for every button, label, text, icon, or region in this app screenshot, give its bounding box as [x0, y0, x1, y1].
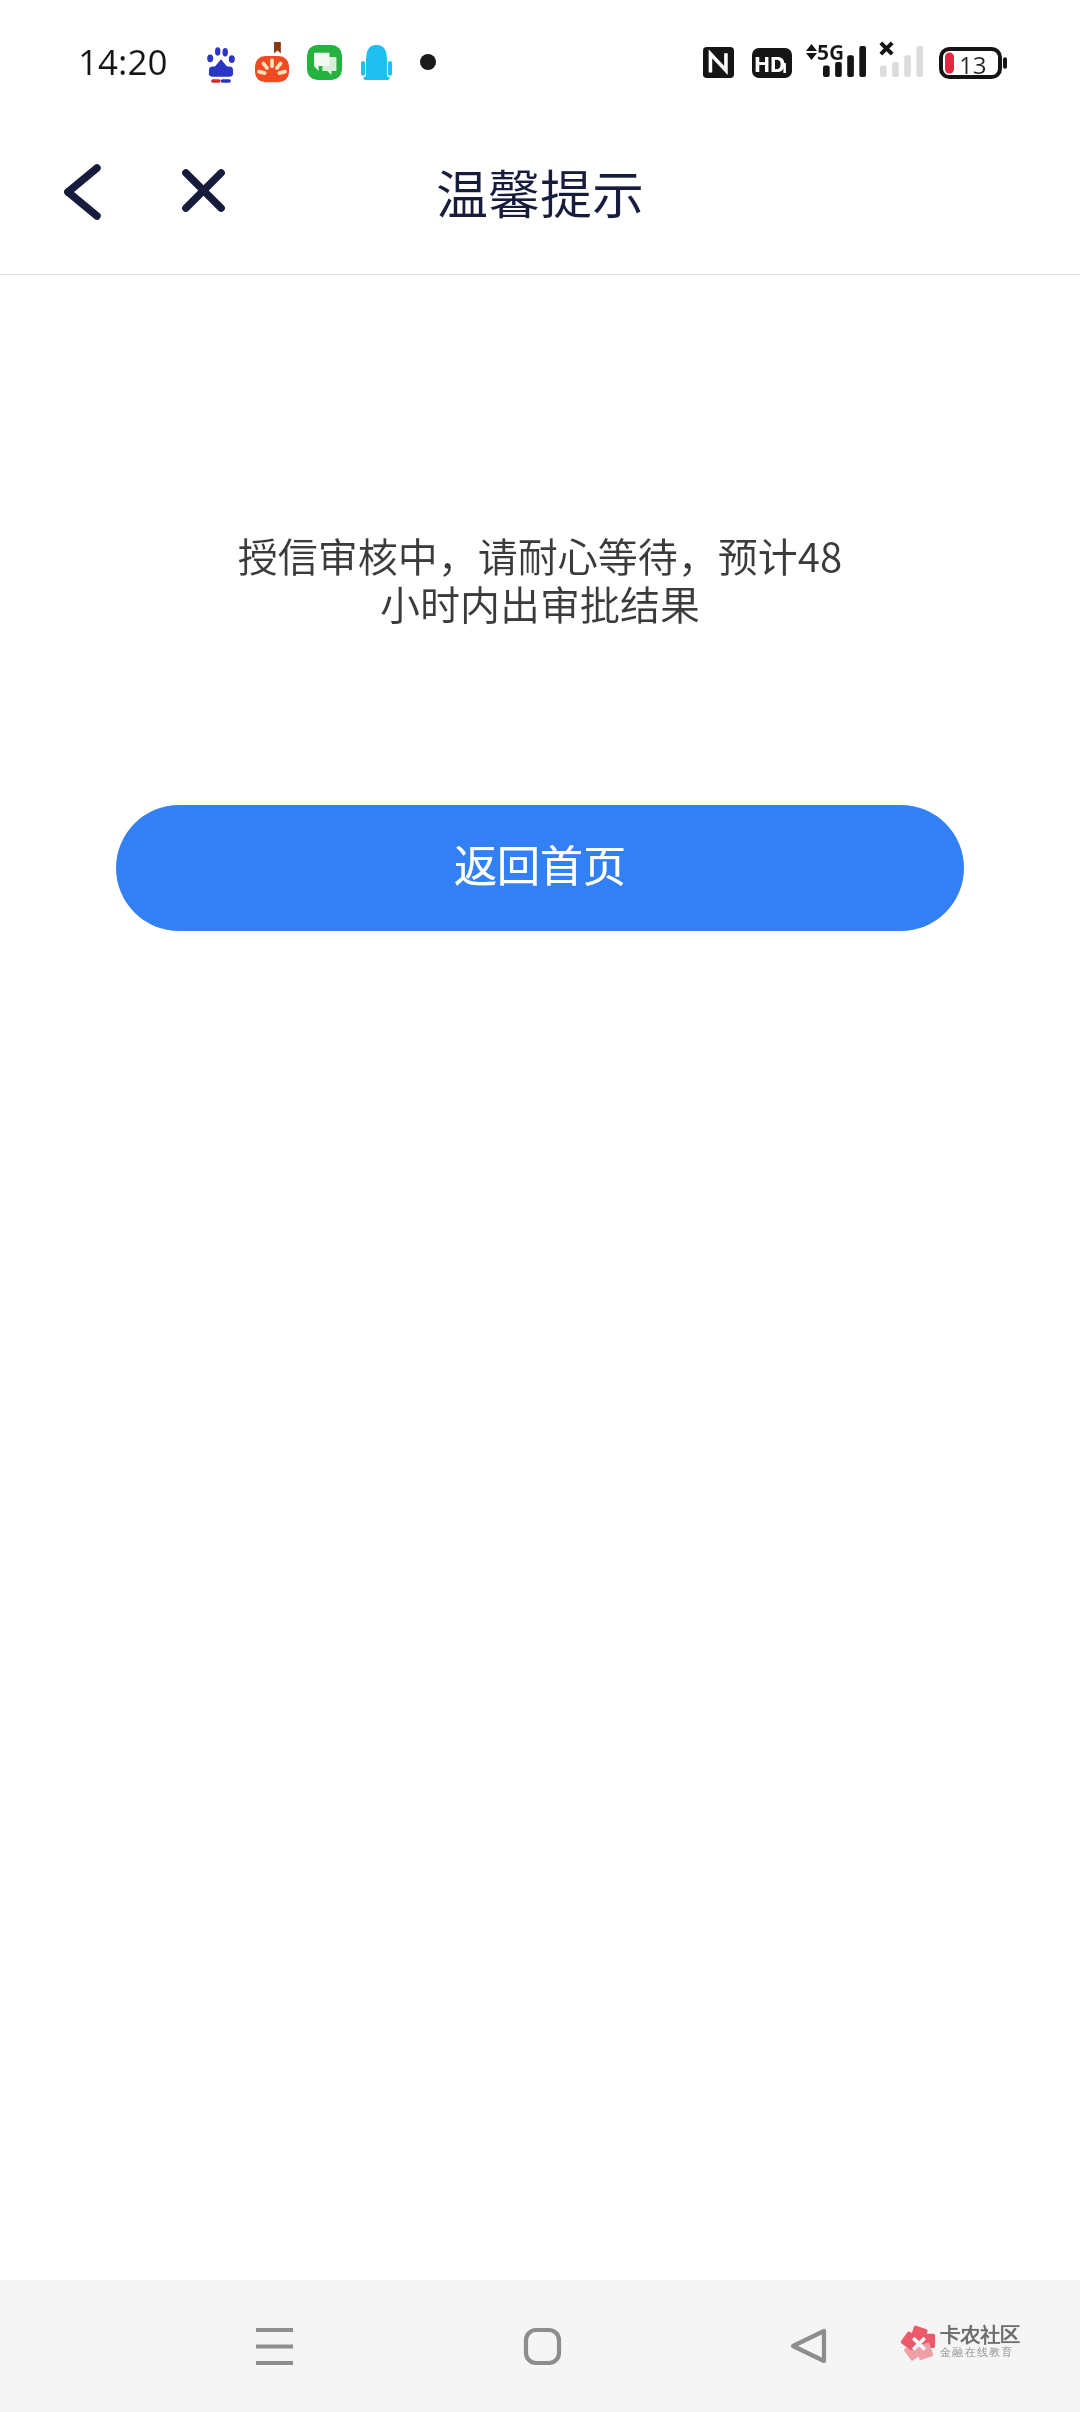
- staticText: HD: [754, 50, 786, 79]
- staticText: 14:20: [78, 38, 168, 86]
- staticText: 5G: [817, 38, 845, 67]
- staticText: 13: [959, 48, 987, 80]
- staticText: 温馨提示: [436, 154, 645, 229]
- staticText: 金融在线教育: [940, 2345, 1014, 2359]
- staticText: 返回首页: [454, 832, 626, 894]
- staticText: 1: [780, 58, 789, 77]
- button[interactable]: Back: [40, 150, 124, 234]
- button[interactable]: Home: [504, 2308, 580, 2384]
- button[interactable]: Back: [770, 2308, 846, 2384]
- button[interactable]: Recent apps: [236, 2308, 312, 2384]
- staticText: 卡农社区: [940, 2323, 1020, 2348]
- button[interactable]: Close: [161, 148, 245, 232]
- staticText: 授信审核中，请耐心等待，预计48小时内出审批结果: [220, 526, 860, 631]
- button[interactable]: 返回首页: [116, 805, 964, 931]
